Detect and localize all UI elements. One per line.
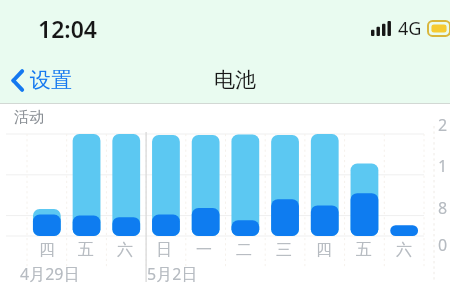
staticText: 六 [117, 240, 133, 260]
staticText: 三 [276, 240, 292, 260]
staticText: 4月29日 [20, 263, 80, 285]
staticText: 4G [398, 16, 422, 41]
staticText: 1 [438, 155, 448, 177]
staticText: 2 [438, 114, 448, 136]
button[interactable] [0, 128, 450, 278]
button[interactable]: Back to 设置 [0, 62, 84, 98]
staticText: 四 [39, 240, 55, 260]
staticText: 8 [438, 197, 448, 219]
staticText: 五 [356, 240, 372, 260]
staticText: 五 [78, 240, 94, 260]
staticText: 设置 [30, 67, 72, 93]
staticText: 四 [316, 240, 332, 260]
staticText: 日 [156, 240, 172, 260]
staticText: 0 [438, 234, 448, 256]
staticText: 二 [236, 240, 252, 260]
staticText: 5月2日 [147, 263, 198, 285]
staticText: 活动 [14, 108, 44, 127]
staticText: 电池 [214, 67, 256, 93]
staticText: 12:04 [38, 13, 97, 44]
staticText: 一 [196, 240, 212, 260]
staticText: 六 [396, 240, 412, 260]
